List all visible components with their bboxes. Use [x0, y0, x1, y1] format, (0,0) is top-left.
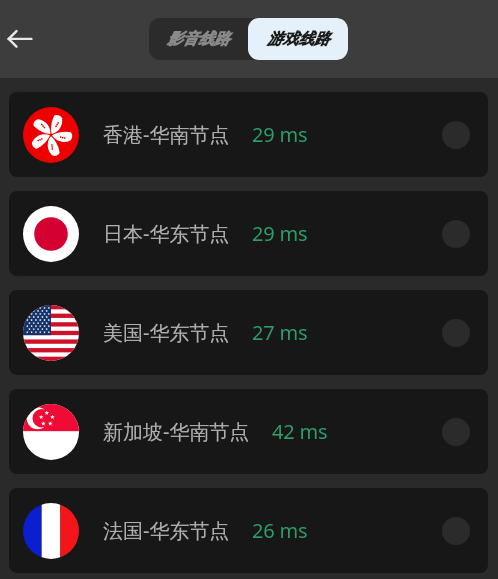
staticText: 香港-华南节点 — [103, 121, 230, 148]
staticText: 游戏线路 — [267, 29, 330, 49]
staticText: 影音线路 — [167, 29, 230, 49]
button[interactable]: Select 法国-华东节点 — [442, 517, 470, 545]
button[interactable]: 游戏线路 — [248, 18, 348, 60]
button[interactable]: 法国-华东节点 — [9, 488, 488, 573]
button[interactable]: Back — [0, 17, 40, 57]
button[interactable]: Select 香港-华南节点 — [442, 121, 470, 149]
staticText: 29 ms — [252, 121, 308, 148]
button[interactable]: 美国-华东节点 — [9, 290, 488, 375]
button[interactable]: Select 新加坡-华南节点 — [442, 418, 470, 446]
staticText: 29 ms — [252, 220, 308, 247]
staticText: 日本-华东节点 — [103, 220, 230, 247]
button[interactable]: Select 美国-华东节点 — [442, 319, 470, 347]
button[interactable]: 日本-华东节点 — [9, 191, 488, 276]
button[interactable]: 香港-华南节点 — [9, 92, 488, 177]
staticText: 26 ms — [252, 517, 308, 544]
staticText: 42 ms — [272, 418, 328, 445]
button[interactable]: 新加坡-华南节点 — [9, 389, 488, 474]
staticText: 美国-华东节点 — [103, 319, 230, 346]
staticText: 27 ms — [252, 319, 308, 346]
staticText: 法国-华东节点 — [103, 517, 230, 544]
button[interactable]: 影音线路 — [149, 18, 248, 60]
staticText: 新加坡-华南节点 — [103, 418, 250, 445]
button[interactable]: Select 日本-华东节点 — [442, 220, 470, 248]
